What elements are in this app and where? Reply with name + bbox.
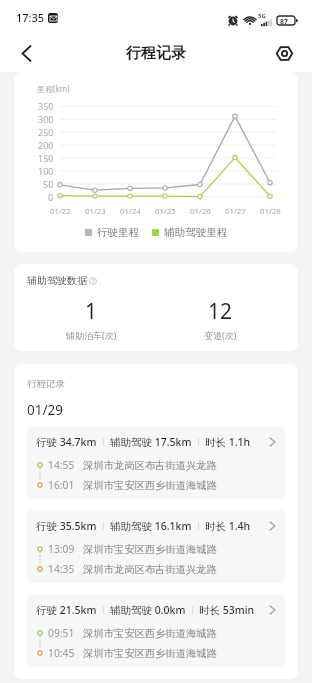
staticText: 辅助驾驶 0.0km	[110, 603, 186, 617]
staticText: 09:51	[48, 626, 75, 640]
staticText: 01/25	[155, 206, 176, 217]
staticText: 01/29	[27, 401, 63, 419]
staticText: 辅助驾驶 17.5km	[110, 435, 192, 449]
staticText: 300	[38, 113, 54, 125]
staticText: 01/23	[85, 206, 106, 217]
staticText: 行驶 34.7km	[36, 435, 97, 449]
staticText: 行驶里程	[97, 226, 140, 239]
button[interactable]: Settings	[273, 42, 295, 64]
staticText: 辅助驾驶 16.1km	[110, 519, 192, 533]
staticText: 01/27	[225, 206, 246, 217]
staticText: 150	[38, 152, 54, 164]
staticText: 14:35	[48, 562, 75, 576]
staticText: 时长 53min	[199, 603, 255, 617]
staticText: 87	[280, 17, 289, 27]
staticText: 辅助驾驶里程	[164, 226, 228, 239]
staticText: 12	[208, 297, 233, 326]
staticText: 16:01	[48, 478, 75, 492]
staticText: 17:35	[16, 10, 45, 25]
staticText: 深圳市宝安区西乡街道海城路	[83, 627, 217, 640]
staticText: 01/24	[120, 206, 141, 217]
staticText: 100	[38, 165, 54, 177]
staticText: 深圳市龙岗区布吉街道兴龙路	[83, 459, 217, 472]
staticText: 250	[38, 126, 54, 138]
staticText: 01/22	[50, 206, 71, 217]
staticText: 0	[48, 191, 54, 203]
staticText: 行程记录	[126, 44, 186, 63]
button[interactable]: 行驶 34.7km	[27, 426, 285, 499]
staticText: 行驶 35.5km	[36, 519, 97, 533]
staticText: 深圳市宝安区西乡街道海城路	[83, 479, 217, 492]
staticText: 辅助泊车(次)	[66, 329, 117, 341]
staticText: 深圳市宝安区西乡街道海城路	[83, 543, 217, 556]
staticText: 13:09	[48, 542, 75, 556]
staticText: 里程(km)	[37, 83, 70, 94]
staticText: 5G	[258, 12, 266, 20]
staticText: 时长 1.4h	[205, 519, 251, 533]
staticText: 时长 1.1h	[205, 435, 251, 449]
staticText: ?	[92, 277, 95, 285]
button[interactable]: 行驶 21.5km	[27, 594, 285, 667]
staticText: 10:45	[48, 646, 75, 660]
staticText: 200	[38, 139, 54, 151]
staticText: 行程记录	[27, 378, 65, 390]
button[interactable]: Back	[12, 39, 40, 67]
staticText: 50	[43, 178, 54, 190]
button[interactable]: 行驶 35.5km	[27, 510, 285, 583]
staticText: 01/26	[190, 206, 211, 217]
staticText: 深圳市龙岗区布吉街道兴龙路	[83, 563, 217, 576]
staticText: 辅助驾驶数据	[27, 274, 87, 287]
staticText: 深圳市宝安区西乡街道海城路	[83, 647, 217, 660]
staticText: 变道(次)	[204, 329, 237, 341]
staticText: 行驶 21.5km	[36, 603, 97, 617]
staticText: 01/28	[260, 206, 281, 217]
staticText: 1	[85, 297, 98, 326]
staticText: 350	[38, 100, 54, 112]
staticText: 14:55	[48, 458, 75, 472]
